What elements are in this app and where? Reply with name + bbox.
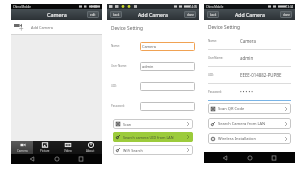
staticText: done: [283, 13, 290, 17]
button[interactable]: UID:: [208, 67, 291, 84]
button[interactable]: Home: [53, 155, 61, 163]
staticText: done: [187, 13, 194, 17]
button[interactable]: admin: [140, 62, 195, 71]
button[interactable]: UserName:: [208, 50, 291, 67]
button[interactable]: Camera: [11, 141, 33, 154]
button[interactable]: Home: [246, 154, 254, 162]
staticText: Wireless Installation: [218, 136, 256, 141]
button[interactable]: Scan: [113, 119, 193, 129]
staticText: Camera: [142, 44, 156, 49]
staticText: Camera: [240, 38, 257, 44]
staticText: China Mobile: [13, 5, 31, 9]
button[interactable]: Name:: [208, 33, 291, 50]
button[interactable]: Recents: [77, 155, 85, 163]
button[interactable]: back: [110, 11, 122, 18]
staticText: Picture: [40, 149, 50, 153]
staticText: Password:: [208, 90, 240, 94]
staticText: admin: [142, 64, 154, 69]
staticText: UID:: [208, 73, 240, 77]
staticText: WiFi Search: [123, 148, 143, 153]
button[interactable]: WiFi Search: [113, 145, 193, 155]
staticText: User Name:: [111, 64, 140, 68]
button[interactable]: Camera: [140, 42, 195, 51]
staticText: UserName:: [208, 56, 240, 60]
staticText: Name:: [208, 39, 240, 43]
staticText: Video: [64, 149, 72, 153]
button[interactable]: [140, 102, 195, 111]
button[interactable]: Back: [221, 154, 229, 162]
button[interactable]: [140, 82, 195, 91]
staticText: Add Camera: [235, 11, 265, 18]
staticText: Name:: [111, 44, 140, 48]
button[interactable]: Wireless Installation: [208, 133, 291, 144]
button[interactable]: Scan QR Code: [208, 103, 291, 114]
staticText: Device Setting: [208, 24, 240, 31]
button[interactable]: Search Camera from LAN: [208, 118, 291, 129]
button[interactable]: About: [79, 141, 102, 154]
button[interactable]: Add Camera: [11, 20, 102, 34]
staticText: EEEE-014882-PUPBE: [240, 72, 282, 78]
staticText: About: [86, 149, 95, 153]
staticText: 14:05: [190, 5, 198, 9]
staticText: • • • • •: [240, 89, 253, 95]
staticText: Search camera UID from LAN: [123, 135, 174, 140]
staticText: admin: [240, 55, 254, 61]
staticText: Password:: [111, 104, 140, 108]
button[interactable]: Video: [56, 141, 79, 154]
staticText: edit: [90, 13, 96, 17]
staticText: Scan QR Code: [218, 106, 245, 111]
staticText: Add Camera: [31, 25, 53, 30]
staticText: Camera: [47, 11, 67, 18]
button[interactable]: done: [280, 11, 292, 18]
staticText: Scan: [123, 122, 132, 127]
button[interactable]: Back: [28, 155, 36, 163]
staticText: Camera: [17, 149, 28, 153]
staticText: Add Camera: [138, 11, 168, 18]
button[interactable]: edit: [87, 11, 99, 18]
button[interactable]: done: [184, 11, 196, 18]
staticText: Search Camera from LAN: [218, 121, 266, 126]
button[interactable]: Picture: [33, 141, 56, 154]
button[interactable]: Password:: [208, 84, 291, 101]
button[interactable]: back: [207, 11, 219, 18]
staticText: back: [113, 13, 120, 17]
staticText: UID:: [111, 84, 140, 88]
staticText: China Mobile: [206, 5, 224, 9]
button[interactable]: Search camera UID from LAN: [113, 132, 193, 142]
staticText: 13:34: [286, 5, 294, 9]
staticText: Device Setting: [111, 25, 143, 32]
button[interactable]: Recents: [270, 154, 278, 162]
staticText: back: [210, 13, 217, 17]
